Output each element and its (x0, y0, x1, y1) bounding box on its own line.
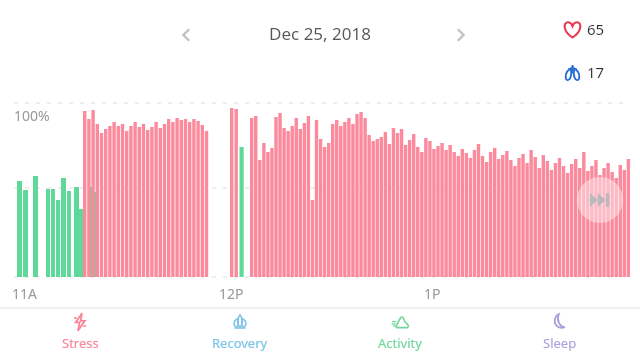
button[interactable]: Next day (443, 18, 477, 52)
button[interactable]: Skip forward (577, 177, 623, 223)
button[interactable]: Activity (320, 308, 480, 360)
staticText: Recovery (212, 334, 268, 352)
button[interactable]: 17 (553, 57, 614, 87)
staticText: Stress (62, 334, 99, 352)
staticText: 65 (583, 19, 605, 39)
button[interactable]: Recovery (160, 308, 320, 360)
staticText: 1P (424, 284, 441, 303)
staticText: 12P (219, 284, 244, 303)
button[interactable]: Sleep (480, 308, 640, 360)
button[interactable]: Stress (0, 308, 160, 360)
staticText: Sleep (543, 334, 577, 352)
staticText: Dec 25, 2018 (269, 22, 371, 45)
button[interactable]: 65 (553, 14, 614, 44)
staticText: 11A (12, 284, 37, 303)
staticText: 17 (583, 62, 605, 82)
staticText: Activity (378, 334, 422, 352)
button[interactable]: Previous day (170, 18, 204, 52)
button[interactable]: Dec 25, 2018 (240, 16, 400, 50)
staticText: 100% (14, 106, 50, 125)
